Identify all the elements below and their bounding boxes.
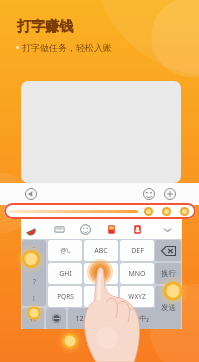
button[interactable]: Voice to text <box>52 222 66 236</box>
button[interactable]: PQRS <box>48 286 82 307</box>
staticText: 123 <box>75 314 88 324</box>
button[interactable]: Space <box>96 308 129 329</box>
button[interactable]: Change input language <box>46 308 66 329</box>
button[interactable]: Gift <box>130 222 144 236</box>
button[interactable]: Stickers <box>23 222 37 236</box>
staticText: @\. <box>60 246 71 255</box>
staticText: ! <box>33 294 35 303</box>
button[interactable]: MNO <box>120 263 154 284</box>
button[interactable]: TUV <box>84 286 118 307</box>
button[interactable]: Emoji panel <box>78 222 92 236</box>
staticText: · <box>33 243 35 252</box>
button[interactable]: 换行 <box>155 263 181 284</box>
staticText: PQRS <box>57 292 74 301</box>
button[interactable]: Red packet <box>104 222 118 236</box>
button[interactable]: Add attachment <box>164 188 176 200</box>
button[interactable]: JKL <box>84 263 118 284</box>
button[interactable]: 发送 <box>155 286 181 329</box>
staticText: DEF <box>131 246 144 256</box>
button[interactable]: 中₂ <box>131 308 156 329</box>
staticText: TUV <box>94 292 108 302</box>
button[interactable]: GHI <box>48 263 82 284</box>
staticText: ? <box>33 277 36 286</box>
staticText: 换行 <box>161 269 176 278</box>
staticText: MNO <box>128 269 146 279</box>
button[interactable]: Backspace <box>155 240 181 261</box>
staticText: 打字做任务，轻松入账 <box>22 42 112 53</box>
staticText: 打字赚钱 <box>17 18 73 36</box>
staticText: WXYZ <box>128 292 146 301</box>
button[interactable]: Collapse keyboard <box>160 222 174 236</box>
button[interactable]: Voice input <box>25 188 37 200</box>
staticText: JKL <box>96 269 106 279</box>
staticText: 符 <box>30 314 37 323</box>
staticText: ， <box>31 260 38 268</box>
button[interactable] <box>4 203 196 219</box>
staticText: GHI <box>59 269 72 279</box>
button[interactable]: 123 <box>68 308 94 329</box>
button[interactable]: Emoji <box>143 188 155 200</box>
button[interactable]: Punctuation <box>22 240 46 306</box>
button[interactable]: ABC <box>84 240 118 261</box>
staticText: 中₂ <box>139 314 149 324</box>
button[interactable]: WXYZ <box>120 286 154 307</box>
button[interactable]: 符 <box>22 308 44 329</box>
staticText: 发送 <box>161 303 176 312</box>
button[interactable]: DEF <box>120 240 154 261</box>
button[interactable]: @\. <box>48 240 82 261</box>
staticText: ABC <box>94 246 108 256</box>
